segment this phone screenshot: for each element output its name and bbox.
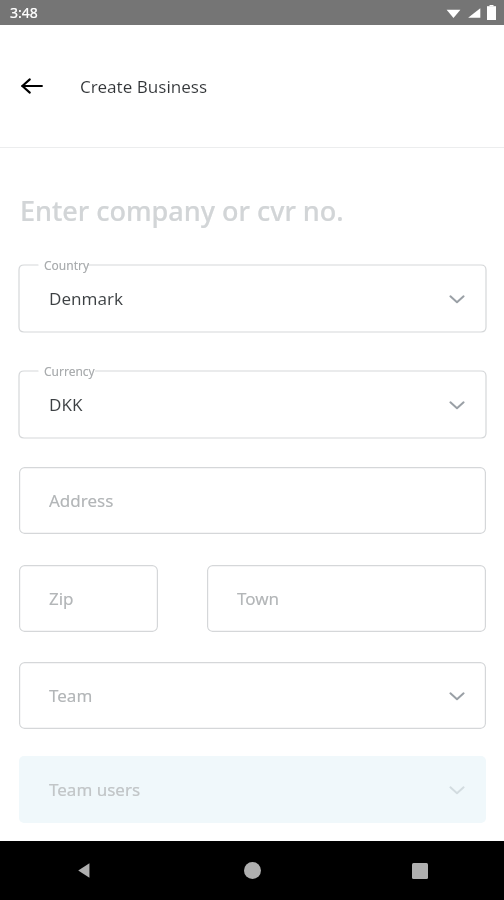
- staticText: Currency: [44, 363, 95, 379]
- staticText: Country: [44, 257, 90, 273]
- button[interactable]: Recent apps: [336, 841, 504, 900]
- staticText: 3:48: [10, 3, 38, 22]
- staticText: Town: [237, 587, 280, 610]
- button[interactable]: Zip: [19, 565, 158, 632]
- button[interactable]: Team: [19, 662, 486, 729]
- staticText: Team users: [49, 778, 141, 801]
- button[interactable]: Address: [19, 467, 486, 534]
- button[interactable]: Team users: [19, 756, 486, 823]
- button[interactable]: Back: [10, 64, 54, 108]
- staticText: DKK: [49, 393, 83, 416]
- staticText: Denmark: [49, 287, 124, 310]
- staticText: Team: [49, 684, 93, 707]
- staticText: Address: [49, 489, 114, 512]
- button[interactable]: Home: [168, 841, 336, 900]
- staticText: Enter company or cvr no.: [20, 192, 344, 229]
- button[interactable]: Back: [0, 841, 168, 900]
- button[interactable]: Currency: [19, 363, 486, 438]
- staticText: Zip: [49, 587, 74, 610]
- staticText: Create Business: [80, 75, 208, 98]
- button[interactable]: Town: [207, 565, 486, 632]
- button[interactable]: Country: [19, 257, 486, 332]
